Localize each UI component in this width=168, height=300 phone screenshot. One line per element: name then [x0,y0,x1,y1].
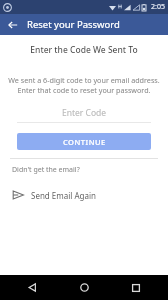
staticText: We sent a 6-digit code to your email add… [6,75,162,95]
button[interactable]: Back [5,17,21,33]
staticText: Didn't get the email? [12,165,80,175]
button[interactable]: Enter Code [17,107,151,123]
staticText: Enter Code [62,107,107,119]
staticText: Send Email Again [31,190,96,201]
button[interactable]: Recent apps [116,275,156,300]
button[interactable]: Home [64,275,104,300]
staticText: Enter the Code We Sent To [30,44,138,56]
button[interactable]: CONTINUE [17,133,151,150]
staticText: CONTINUE [63,137,106,147]
button[interactable]: Back [12,275,52,300]
staticText: Reset your Password [27,18,120,31]
staticText: 2:05 [151,2,165,12]
button[interactable]: Send Email Again [12,186,156,204]
